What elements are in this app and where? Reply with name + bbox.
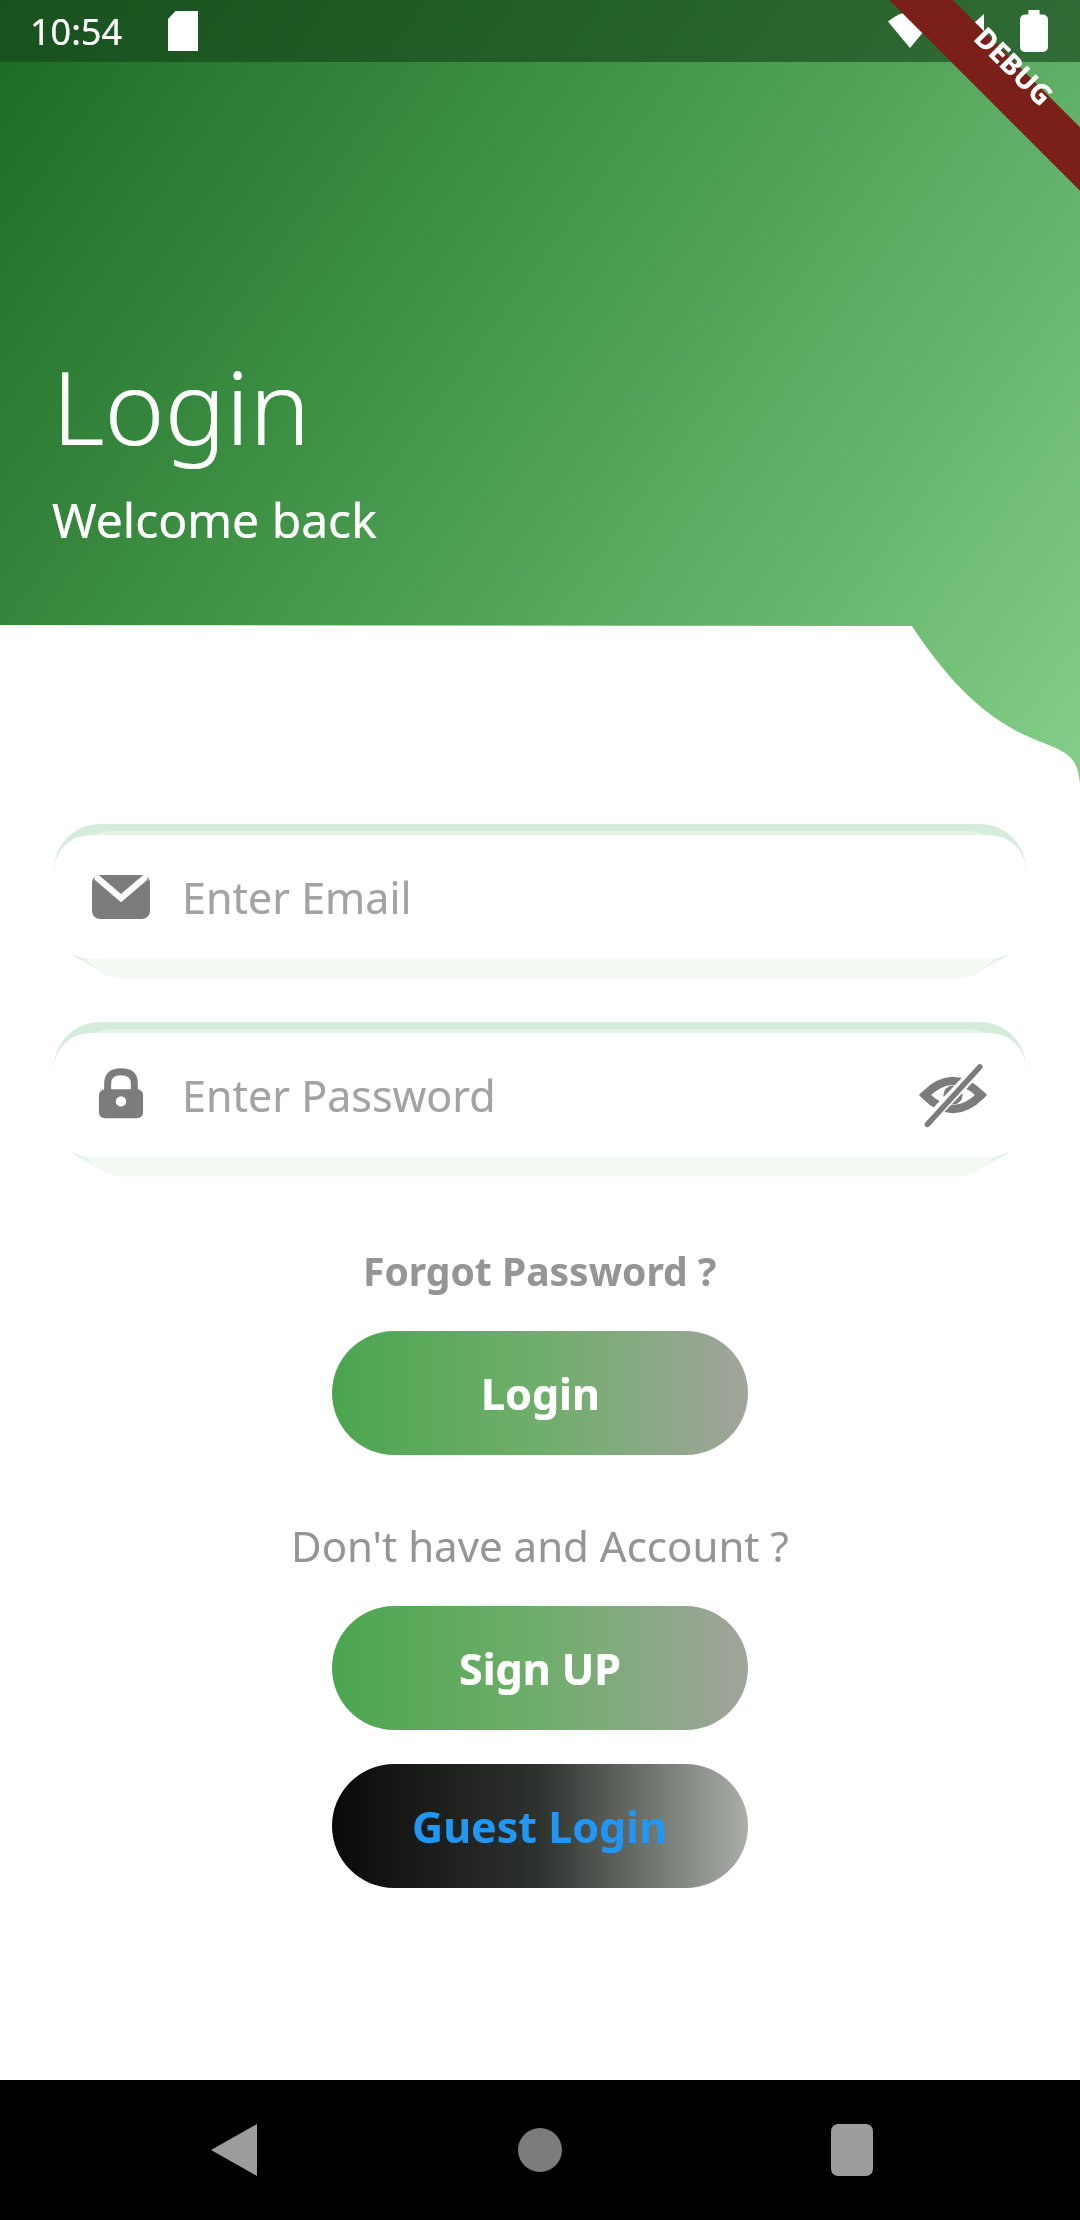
staticText: 10:54 [30,7,123,56]
staticText: Don't have and Account ? [291,1517,789,1574]
button[interactable]: Don't have and Account ? [271,1511,809,1580]
button[interactable]: Sign UP [332,1606,748,1730]
staticText: Login [52,336,311,475]
staticText: Enter Email [182,868,412,927]
button[interactable]: Show password [908,1050,998,1140]
button[interactable]: Enter Password [54,1033,1026,1157]
staticText: Enter Password [182,1066,496,1125]
button[interactable]: Login [332,1331,748,1455]
staticText: Welcome back [52,487,377,552]
button[interactable]: Recent apps [812,2110,892,2190]
button[interactable]: Back [194,2110,274,2190]
staticText: Login [481,1364,600,1423]
staticText: Sign UP [459,1639,622,1698]
button[interactable]: Forgot Password ? [343,1236,737,1305]
staticText: Forgot Password ? [363,1244,717,1297]
button[interactable]: Guest Login [332,1764,748,1888]
button[interactable]: Home [495,2105,585,2195]
staticText: Guest Login [412,1797,668,1856]
staticText: DEBUG [967,18,1062,114]
button[interactable]: Enter Email [54,835,1026,959]
